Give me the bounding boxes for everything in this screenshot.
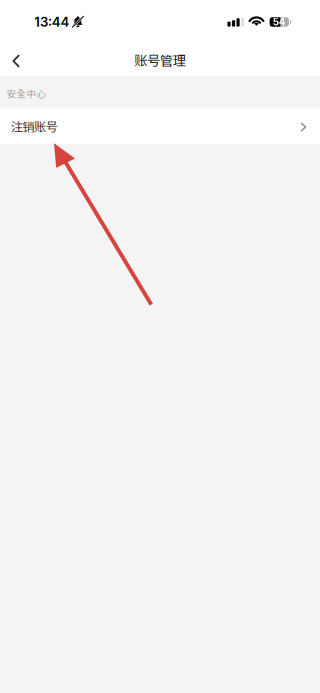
- staticText: 安全中心: [7, 88, 46, 99]
- button[interactable]: Back: [1, 44, 33, 76]
- button[interactable]: 注销账号: [0, 107, 320, 144]
- staticText: 账号管理: [134, 53, 186, 68]
- staticText: 注销账号: [11, 119, 57, 134]
- staticText: 54: [273, 16, 286, 28]
- staticText: 13:44: [34, 14, 70, 30]
